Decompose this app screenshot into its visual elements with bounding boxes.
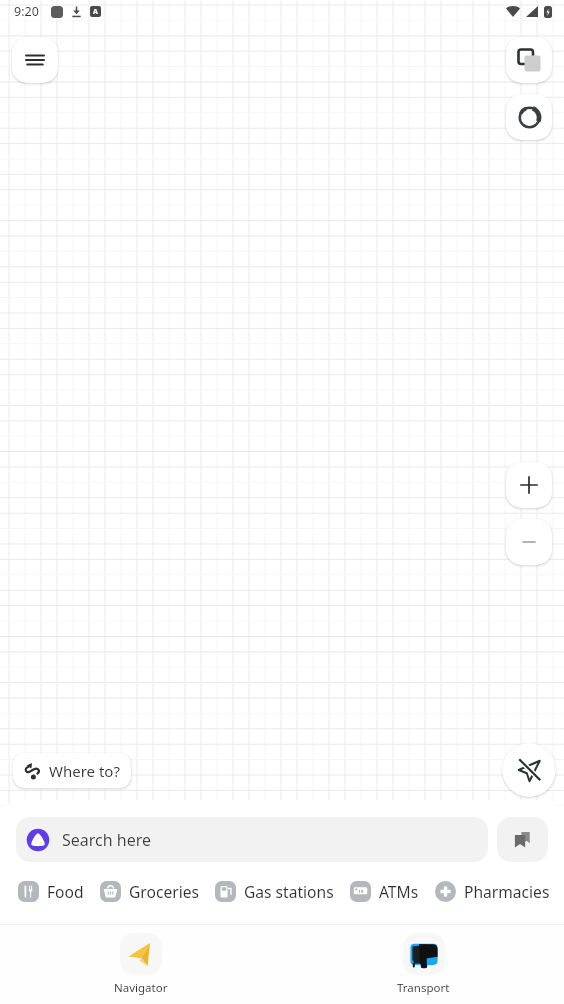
button[interactable]: Zoom in [506, 462, 552, 508]
staticText: ATMs [379, 881, 419, 902]
staticText: A [93, 7, 98, 17]
staticText: Navigator [114, 980, 168, 996]
staticText: Transport [397, 980, 450, 996]
button[interactable]: Map layers [506, 37, 552, 83]
button[interactable]: Transport [375, 927, 472, 1002]
button[interactable]: ATMs [350, 877, 419, 906]
button[interactable]: Pharmacies [435, 877, 550, 906]
staticText: Where to? [49, 761, 120, 781]
button[interactable]: My location off [502, 743, 556, 797]
button[interactable]: Compass [506, 94, 552, 140]
button[interactable]: Zoom out [506, 519, 552, 565]
staticText: Search here [62, 829, 152, 851]
button[interactable]: Menu [12, 37, 58, 83]
staticText: Pharmacies [464, 881, 550, 902]
button[interactable]: Groceries [100, 877, 199, 906]
staticText: 9:20 [14, 3, 39, 20]
button[interactable]: Bookmarks [497, 817, 548, 862]
staticText: Gas stations [244, 881, 334, 902]
button[interactable]: Food [18, 877, 84, 906]
button[interactable]: Search here [16, 817, 488, 862]
button[interactable]: Where to? [13, 753, 131, 788]
staticText: Groceries [129, 881, 199, 902]
button[interactable]: Gas stations [215, 877, 334, 906]
button[interactable]: Navigator [92, 927, 190, 1002]
staticText: Food [47, 881, 84, 902]
